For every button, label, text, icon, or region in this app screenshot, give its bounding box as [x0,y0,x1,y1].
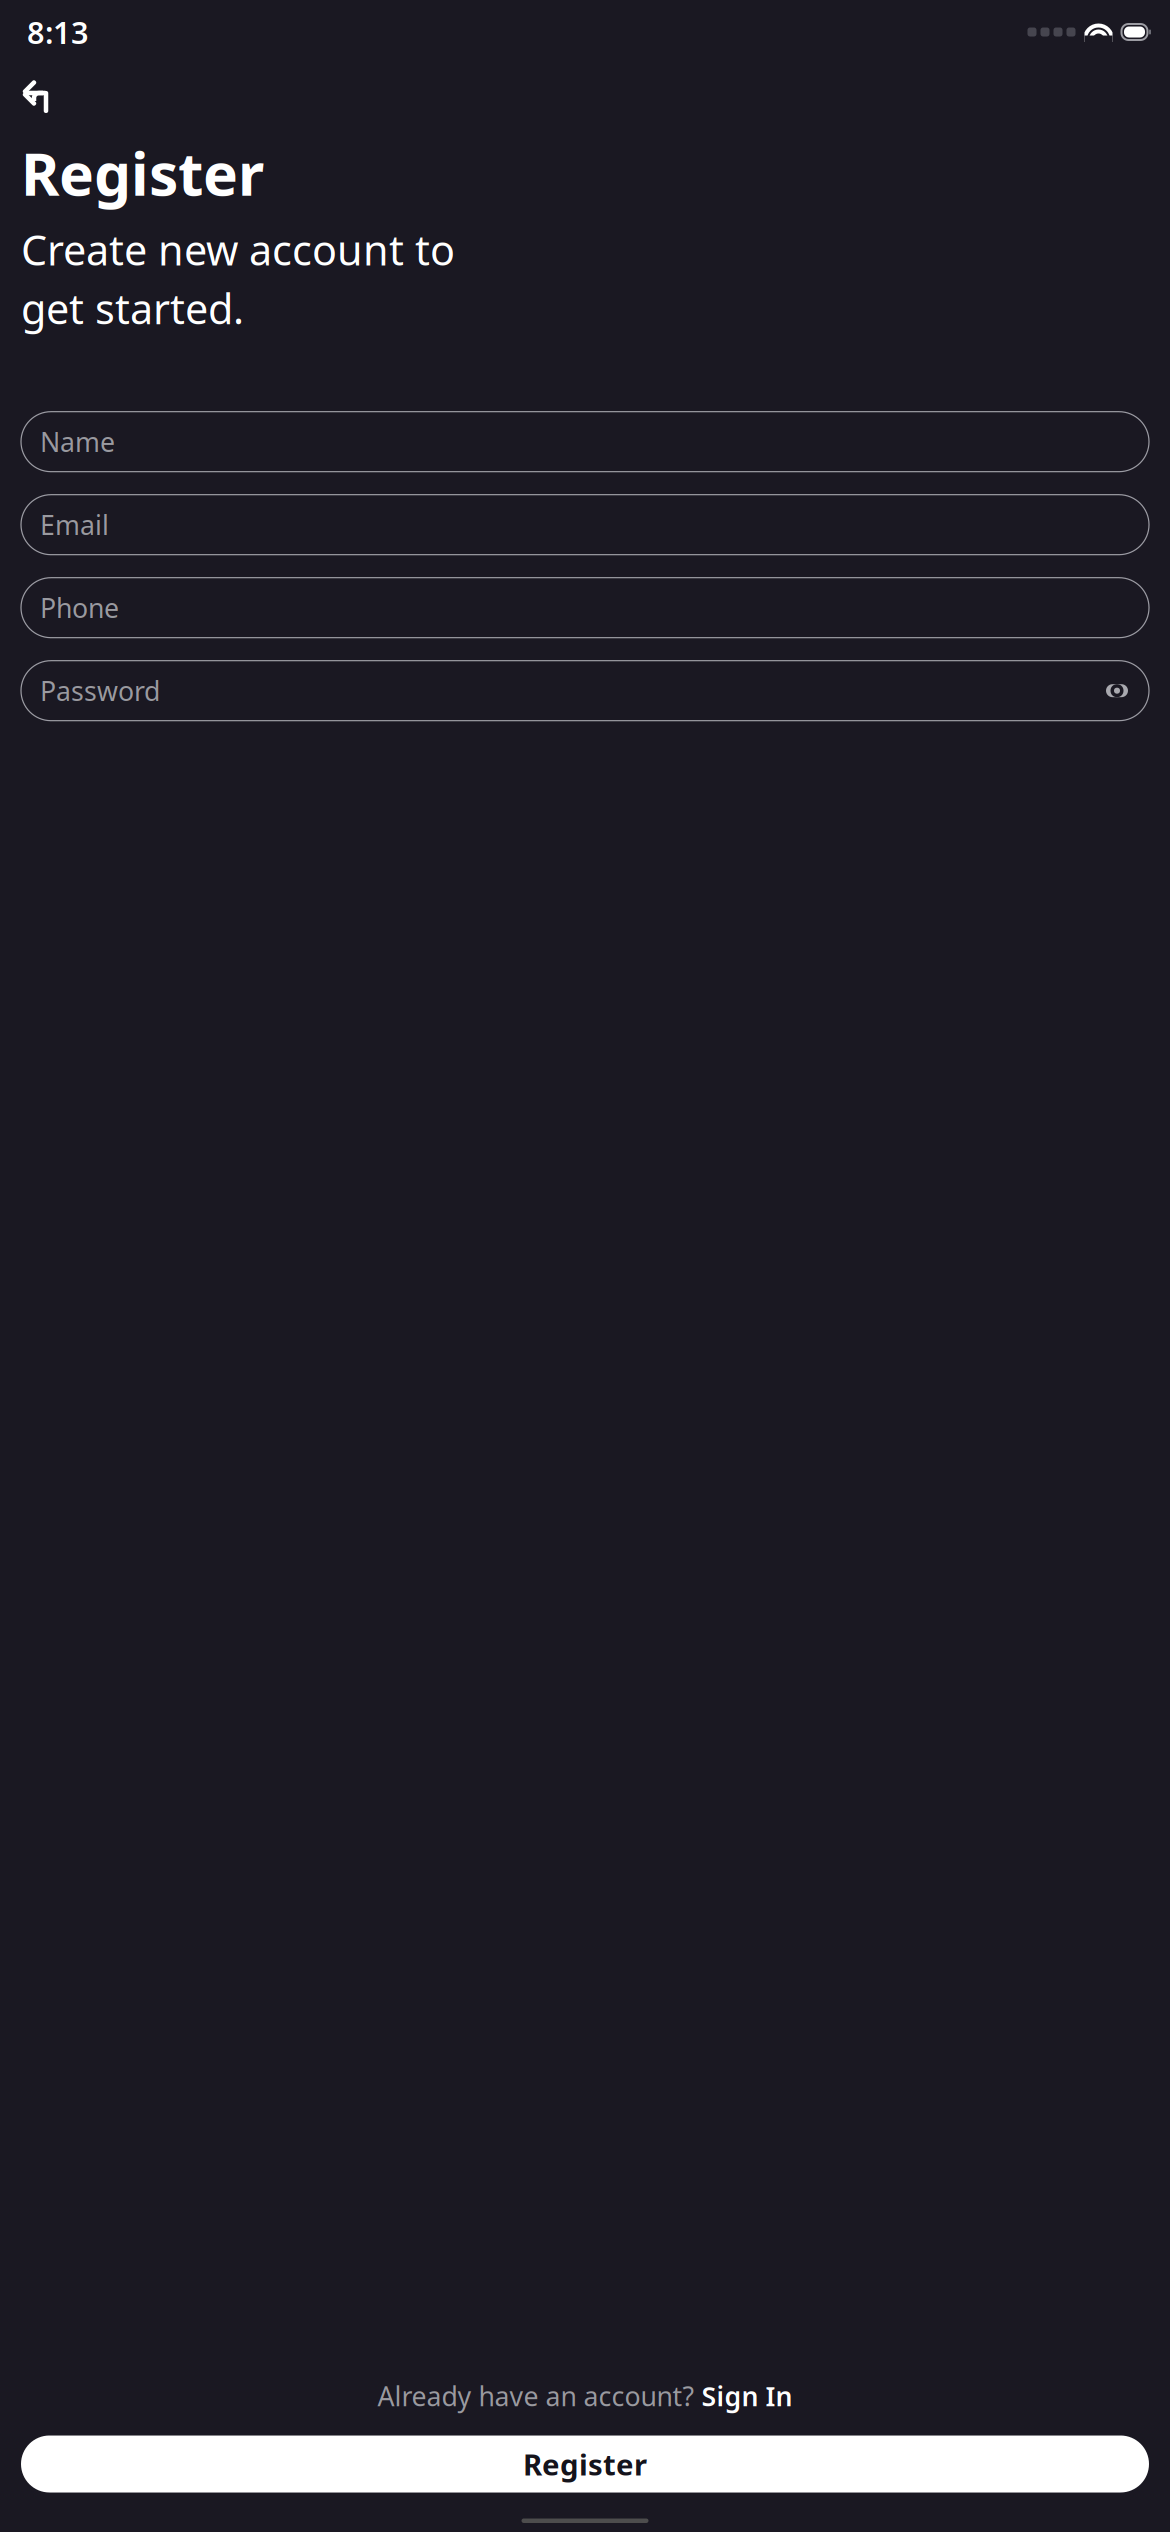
staticText: get started. [21,281,244,336]
staticText: 8:13 [27,12,89,52]
staticText: Name [40,424,115,459]
button[interactable]: Back [14,72,58,116]
staticText: Email [40,507,109,542]
staticText: Sign In [701,2378,792,2413]
staticText: Phone [40,590,119,625]
button[interactable]: Show password [1097,671,1137,711]
staticText: Register [21,134,264,212]
staticText: Password [40,673,160,708]
staticText: Create new account to [21,222,455,277]
staticText: Register [523,2444,647,2483]
staticText: Already have an account? [377,2378,701,2413]
button[interactable]: Register [21,2435,1149,2492]
button[interactable]: Sign In [701,2378,792,2413]
